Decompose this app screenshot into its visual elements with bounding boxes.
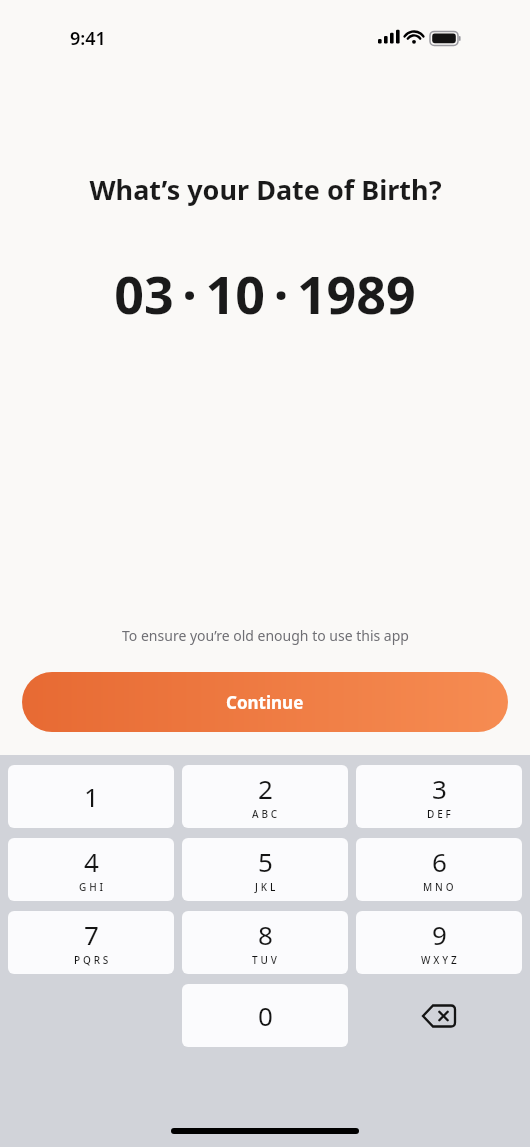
staticText: 9 — [432, 917, 447, 952]
staticText: 9:41 — [70, 26, 106, 51]
staticText: 6 — [432, 844, 447, 879]
staticText: W X Y Z — [421, 953, 458, 967]
button[interactable]: 7 — [8, 911, 174, 974]
staticText: P Q R S — [74, 953, 109, 967]
staticText: 1 — [84, 779, 99, 814]
button[interactable]: 6 — [356, 838, 522, 901]
staticText: 4 — [84, 844, 99, 879]
staticText: 8 — [258, 917, 273, 952]
button[interactable]: 5 — [182, 838, 348, 901]
staticText: 03 · 10 · 1989 — [114, 258, 416, 329]
staticText: What’s your Date of Birth? — [89, 171, 442, 208]
button[interactable]: 1 — [8, 765, 174, 828]
staticText: G H I — [79, 880, 104, 894]
staticText: 3 — [432, 771, 447, 806]
staticText: 5 — [258, 844, 273, 879]
staticText: 0 — [258, 998, 273, 1033]
staticText: D E F — [427, 807, 452, 821]
button[interactable]: 0 — [182, 984, 348, 1047]
staticText: A B C — [252, 807, 278, 821]
staticText: 7 — [84, 917, 99, 952]
staticText: T U V — [252, 953, 278, 967]
staticText: 2 — [258, 771, 273, 806]
button[interactable]: 3 — [356, 765, 522, 828]
staticText: Continue — [226, 691, 304, 714]
button[interactable]: 2 — [182, 765, 348, 828]
staticText: J K L — [255, 880, 276, 894]
button[interactable]: 8 — [182, 911, 348, 974]
button[interactable]: 4 — [8, 838, 174, 901]
staticText: M N O — [423, 880, 455, 894]
button[interactable]: Continue — [22, 672, 508, 732]
button[interactable]: 9 — [356, 911, 522, 974]
staticText: To ensure you’re old enough to use this … — [122, 626, 409, 645]
button[interactable]: Backspace — [356, 984, 522, 1047]
